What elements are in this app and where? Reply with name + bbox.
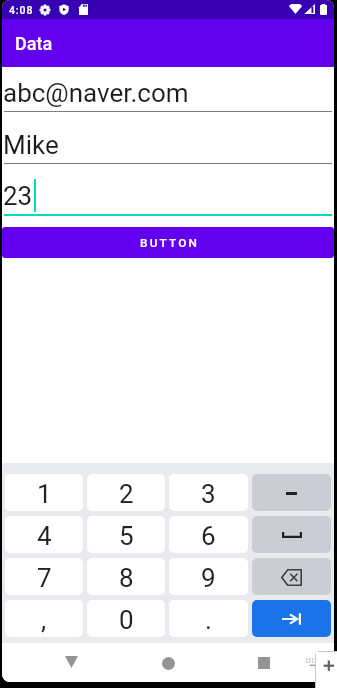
staticText: 1 [37,479,52,509]
button[interactable]: Back [55,648,87,676]
button[interactable]: Next [252,600,331,637]
button[interactable]: Mike [2,119,334,170]
staticText: 9 [201,563,216,593]
button[interactable]: Recents [248,649,280,677]
button[interactable]: 7 [5,558,83,595]
staticText: BUTTON [140,236,200,250]
button[interactable]: Space [252,516,331,553]
button[interactable]: Minus [252,474,331,511]
staticText: , [41,605,47,635]
staticText: 2 [119,479,134,509]
button[interactable]: 5 [87,516,165,553]
button[interactable]: Data [2,19,334,67]
button[interactable]: 6 [169,516,248,553]
staticText: 6 [201,521,216,551]
staticText: 0 [119,605,134,635]
button[interactable]: BUTTON [2,227,334,258]
button[interactable]: 9 [169,558,248,595]
staticText: Mike [3,130,59,160]
button[interactable]: 23 [2,170,334,221]
button[interactable]: 3 [169,474,248,511]
button[interactable]: 4 [5,516,83,553]
button[interactable]: 2 [87,474,165,511]
button[interactable]: 1 [5,474,83,511]
staticText: 8 [119,563,134,593]
staticText: 4:08 [9,4,34,16]
button[interactable]: abc@naver.com [2,67,334,118]
button[interactable]: . [169,600,248,637]
staticText: 23 [3,181,33,211]
staticText: abc@naver.com [3,78,189,108]
button[interactable]: , [5,600,83,637]
staticText: 7 [37,563,52,593]
staticText: 5 [119,521,134,551]
button[interactable]: 8 [87,558,165,595]
button[interactable]: Home [152,649,184,677]
staticText: 4 [37,521,52,551]
button[interactable]: 0 [87,600,165,637]
staticText: . [205,605,212,635]
button[interactable]: Switch keyboard [315,651,337,688]
staticText: 3 [201,479,216,509]
staticText: Data [15,33,53,54]
button[interactable]: Backspace [252,558,331,595]
